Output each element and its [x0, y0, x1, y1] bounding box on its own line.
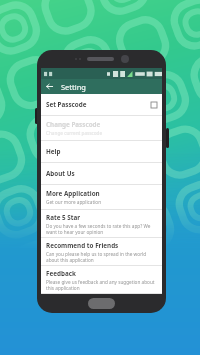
button[interactable]: Help [41, 141, 162, 162]
staticText: Get our more application [46, 199, 102, 205]
staticText: More Application [46, 189, 100, 198]
button[interactable]: Set Passcode [41, 94, 162, 115]
button[interactable]: About Us [41, 163, 162, 184]
staticText: Do you have a few seconds to rate this a… [46, 223, 157, 235]
button[interactable]: More Application [41, 185, 162, 209]
button[interactable]: Change Passcode [41, 116, 162, 140]
button[interactable]: Rate 5 Star [41, 210, 162, 237]
button[interactable]: Back [44, 81, 55, 92]
button[interactable]: Feedback [41, 266, 162, 293]
staticText: Setting [61, 82, 86, 92]
staticText: Change Passcode [46, 120, 101, 129]
staticText: Help [46, 147, 61, 156]
staticText: Please give us feedback and any suggetio… [46, 279, 157, 291]
staticText: Change current passcode [46, 130, 103, 136]
staticText: Recommend to Friends [46, 241, 119, 250]
staticText: Feedback [46, 269, 76, 278]
staticText: Can you please help us to spread in the … [46, 251, 157, 263]
staticText: Rate 5 Star [46, 213, 81, 222]
staticText: About Us [46, 169, 75, 178]
button[interactable]: Recommend to Friends [41, 238, 162, 265]
staticText: Set Passcode [46, 100, 87, 109]
